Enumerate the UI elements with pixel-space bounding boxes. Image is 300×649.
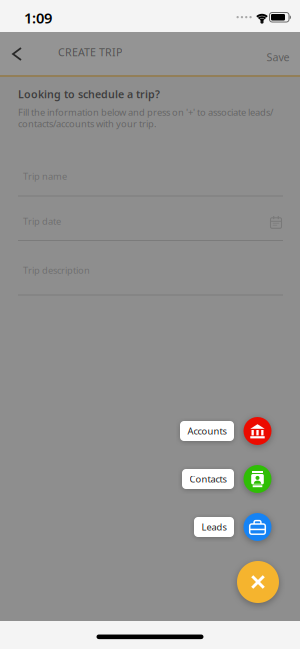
- staticText: contacts/accounts with your trip.: [18, 117, 157, 130]
- button[interactable]: Back: [6, 43, 28, 65]
- button[interactable]: Save: [259, 46, 297, 68]
- staticText: Leads: [201, 521, 226, 533]
- staticText: Looking to schedule a trip?: [18, 87, 160, 101]
- button[interactable]: Close: [237, 561, 279, 603]
- button[interactable]: Leads: [0, 513, 300, 541]
- staticText: Fill the information below and press on …: [18, 106, 273, 118]
- staticText: Trip date: [23, 215, 61, 227]
- staticText: Save: [266, 50, 289, 64]
- button[interactable]: Trip description: [18, 264, 283, 295]
- button[interactable]: Trip date: [18, 215, 283, 241]
- button[interactable]: Contacts: [0, 465, 300, 493]
- staticText: Trip name: [23, 170, 67, 182]
- staticText: Trip description: [23, 264, 90, 276]
- button[interactable]: Accounts: [0, 417, 300, 445]
- staticText: 1:09: [24, 8, 52, 27]
- button[interactable]: Trip name: [18, 170, 283, 196]
- staticText: CREATE TRIP: [58, 45, 122, 59]
- staticText: Contacts: [189, 473, 226, 485]
- staticText: Accounts: [187, 425, 226, 437]
